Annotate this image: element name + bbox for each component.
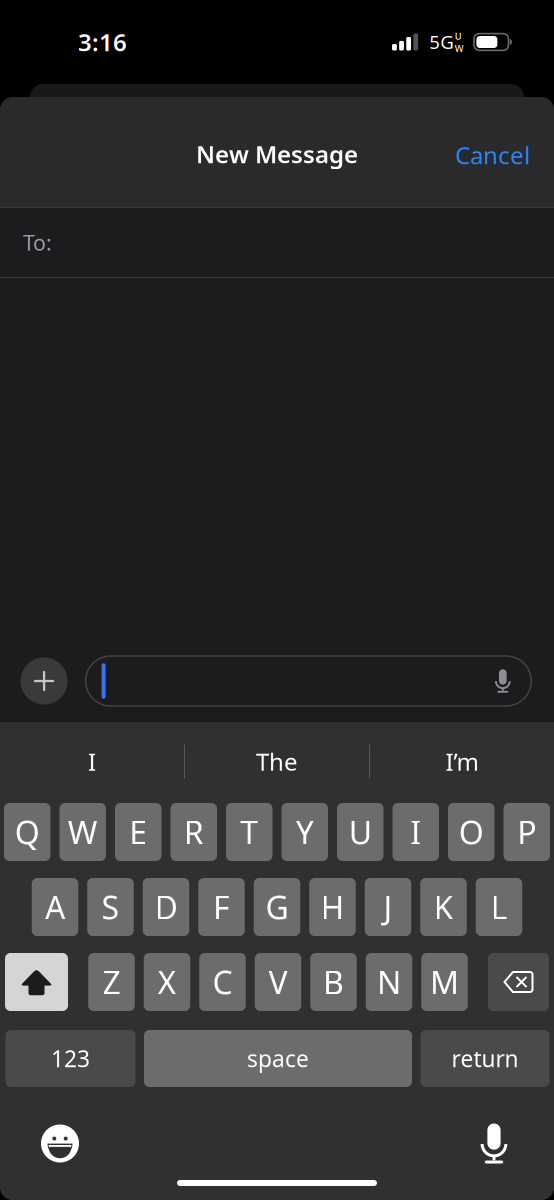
button[interactable]: I’m xyxy=(370,722,554,801)
button[interactable]: U xyxy=(337,803,383,861)
button[interactable]: L xyxy=(476,878,522,936)
button[interactable]: O xyxy=(448,803,494,861)
button[interactable]: J xyxy=(365,878,411,936)
staticText: 3:16 xyxy=(78,26,127,58)
button[interactable]: H xyxy=(309,878,356,936)
button[interactable]: Q xyxy=(4,803,50,861)
button[interactable]: Add attachment xyxy=(21,657,68,704)
staticText: The xyxy=(256,746,298,777)
staticText: I xyxy=(410,811,421,853)
staticText: U xyxy=(455,30,462,42)
staticText: U xyxy=(349,811,372,853)
button[interactable]: X xyxy=(144,953,190,1011)
staticText: I xyxy=(88,746,96,777)
button[interactable]: C xyxy=(199,953,246,1011)
button[interactable]: F xyxy=(198,878,245,936)
staticText: F xyxy=(213,886,230,928)
staticText: return xyxy=(451,1043,518,1073)
staticText: P xyxy=(517,811,536,853)
staticText: Z xyxy=(102,961,120,1003)
staticText: S xyxy=(101,886,119,928)
staticText: space xyxy=(247,1043,309,1073)
button[interactable]: D xyxy=(143,878,189,936)
button[interactable]: I xyxy=(0,722,184,801)
button[interactable]: Emoji keyboard xyxy=(36,1120,84,1167)
staticText: E xyxy=(129,811,147,853)
staticText: O xyxy=(459,811,484,853)
staticText: V xyxy=(268,961,287,1003)
staticText: W xyxy=(68,811,98,853)
staticText: To: xyxy=(23,228,52,257)
staticText: N xyxy=(377,961,401,1003)
button[interactable]: K xyxy=(420,878,467,936)
button[interactable]: Y xyxy=(281,803,328,861)
staticText: M xyxy=(430,961,459,1003)
staticText: 123 xyxy=(51,1043,90,1073)
button[interactable]: N xyxy=(366,953,412,1011)
button[interactable]: Z xyxy=(88,953,135,1011)
button[interactable]: 123 xyxy=(5,1030,135,1087)
button[interactable]: R xyxy=(170,803,217,861)
staticText: I’m xyxy=(445,746,478,777)
staticText: Cancel xyxy=(455,139,530,171)
button[interactable]: space xyxy=(144,1030,412,1087)
button[interactable]: I xyxy=(392,803,439,861)
button[interactable]: M xyxy=(421,953,468,1011)
button[interactable]: S xyxy=(87,878,134,936)
staticText: B xyxy=(323,961,344,1003)
staticText: R xyxy=(184,811,204,853)
button[interactable]: A xyxy=(32,878,78,936)
button[interactable]: E xyxy=(115,803,161,861)
button[interactable]: T xyxy=(226,803,272,861)
button[interactable]: B xyxy=(310,953,357,1011)
staticText: H xyxy=(320,886,344,928)
staticText: X xyxy=(157,961,176,1003)
staticText: G xyxy=(265,886,288,928)
button[interactable]: W xyxy=(59,803,106,861)
button[interactable]: P xyxy=(503,803,550,861)
staticText: A xyxy=(45,886,65,928)
staticText: Q xyxy=(15,811,40,853)
staticText: Y xyxy=(296,811,314,853)
button[interactable]: G xyxy=(254,878,300,936)
staticText: T xyxy=(240,811,258,853)
button[interactable]: Delete xyxy=(488,953,549,1011)
staticText: W xyxy=(455,42,464,55)
button[interactable]: Shift xyxy=(5,953,68,1011)
staticText: C xyxy=(212,961,232,1003)
staticText: L xyxy=(490,886,507,928)
button[interactable]: The xyxy=(185,722,369,801)
button[interactable]: V xyxy=(255,953,301,1011)
staticText: J xyxy=(383,886,392,928)
staticText: D xyxy=(154,886,177,928)
staticText: 5G xyxy=(429,29,454,54)
staticText: New Message xyxy=(196,138,358,170)
staticText: K xyxy=(433,886,453,928)
button[interactable]: return xyxy=(420,1030,549,1087)
button[interactable]: Dictation xyxy=(470,1120,518,1167)
button[interactable]: Cancel xyxy=(437,127,554,183)
